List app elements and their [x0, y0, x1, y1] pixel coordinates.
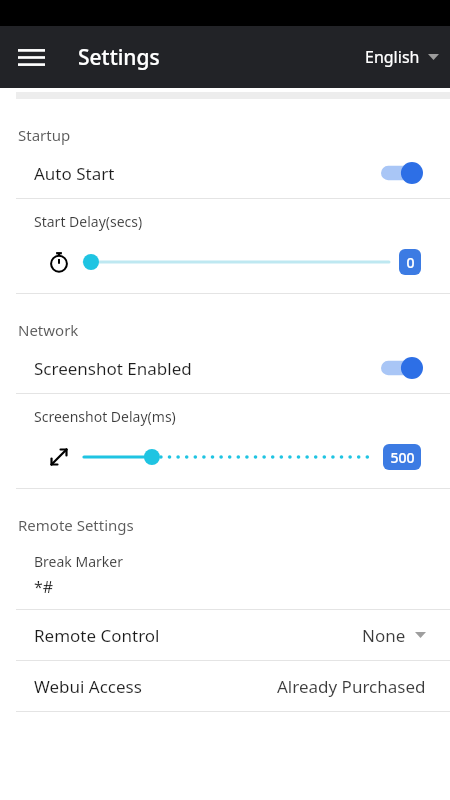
button[interactable]: Timer — [46, 249, 72, 275]
staticText: Screenshot Delay(ms) — [34, 407, 176, 426]
button[interactable]: Resize — [46, 444, 72, 470]
staticText: 500 — [390, 448, 415, 467]
staticText: Screenshot Enabled — [34, 357, 381, 380]
staticText: Auto Start — [34, 162, 381, 185]
button[interactable]: Screenshot Enabled — [0, 343, 450, 393]
staticText: *# — [34, 576, 54, 598]
button[interactable]: Open navigation menu — [11, 37, 51, 77]
staticText: Startup — [18, 125, 450, 145]
staticText: English — [365, 46, 420, 68]
staticText: Remote Control — [34, 624, 362, 647]
staticText: Webui Access — [34, 675, 277, 698]
button[interactable]: Break Marker — [0, 538, 450, 609]
button[interactable]: 500 — [383, 444, 421, 470]
button[interactable]: Remote Control — [0, 610, 450, 660]
button[interactable]: 0 — [399, 249, 421, 275]
staticText: 0 — [406, 253, 415, 272]
button[interactable] — [84, 444, 373, 470]
staticText: None — [362, 624, 406, 647]
staticText: Break Marker — [34, 552, 123, 571]
button[interactable] — [84, 249, 389, 275]
staticText: Network — [18, 320, 450, 340]
staticText: Already Purchased — [277, 675, 426, 698]
button[interactable]: English — [360, 39, 444, 75]
button[interactable]: Auto Start — [0, 148, 450, 198]
staticText: Remote Settings — [18, 515, 450, 535]
staticText: Settings — [78, 43, 160, 72]
staticText: Start Delay(secs) — [34, 212, 143, 231]
button[interactable]: Webui Access — [0, 661, 450, 711]
